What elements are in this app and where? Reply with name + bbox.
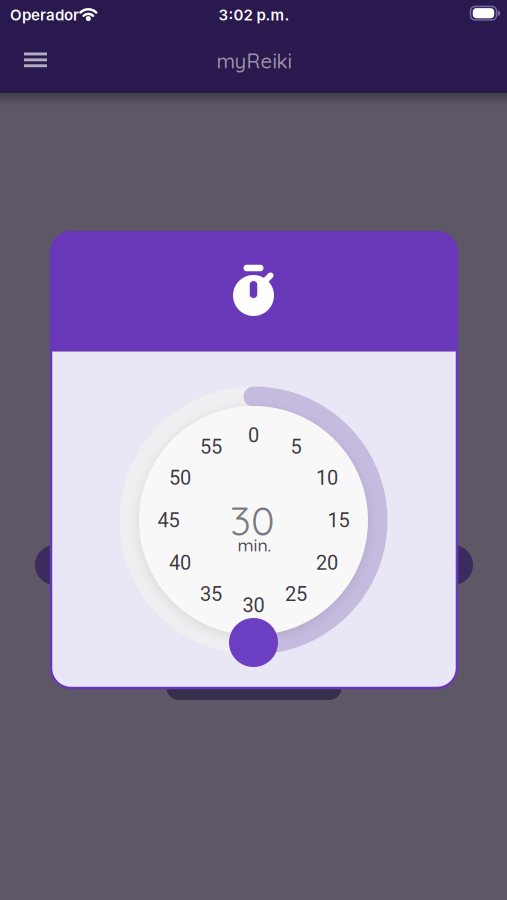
staticText: 15: [327, 509, 349, 532]
button[interactable]: 40: [169, 551, 191, 575]
staticText: 10: [316, 466, 338, 490]
staticText: 20: [316, 551, 338, 575]
button[interactable]: 5: [290, 435, 301, 459]
staticText: 25: [285, 582, 307, 606]
button[interactable]: 45: [157, 509, 179, 532]
button[interactable]: 25: [285, 582, 307, 606]
staticText: 35: [200, 582, 222, 606]
button[interactable]: 50: [169, 466, 191, 490]
button[interactable]: 0: [248, 424, 259, 447]
button[interactable]: [229, 618, 278, 667]
staticText: myReiki: [216, 48, 291, 74]
staticText: 0: [248, 424, 259, 447]
staticText: 30: [230, 496, 275, 545]
button[interactable]: 20: [316, 551, 338, 575]
button[interactable]: 35: [200, 582, 222, 606]
staticText: 30: [242, 594, 264, 617]
staticText: Operador: [10, 6, 79, 24]
staticText: 45: [157, 509, 179, 532]
button[interactable]: 15: [327, 509, 349, 532]
staticText: 5: [290, 435, 301, 459]
button[interactable]: 55: [200, 435, 222, 459]
button[interactable]: 10: [316, 466, 338, 490]
staticText: 50: [169, 466, 191, 490]
staticText: 55: [200, 435, 222, 459]
staticText: 3:02 p.m.: [218, 6, 289, 24]
staticText: 40: [169, 551, 191, 575]
button[interactable]: [15, 40, 55, 80]
button[interactable]: 30: [242, 594, 264, 617]
staticText: min.: [237, 534, 271, 556]
